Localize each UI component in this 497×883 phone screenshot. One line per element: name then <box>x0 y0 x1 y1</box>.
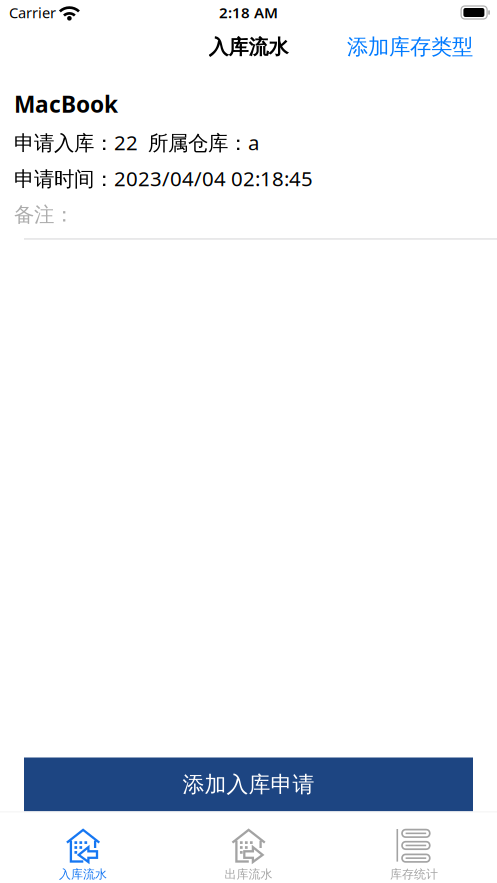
staticText: 入库流水 <box>208 34 288 60</box>
button[interactable]: 添加库存类型 <box>342 25 478 69</box>
staticText: 备注： <box>14 202 74 228</box>
staticText: 出库流水 <box>224 867 272 882</box>
staticText: 申请时间：2023/04/04 02:18:45 <box>14 164 313 192</box>
button[interactable]: 库存统计 <box>331 829 497 882</box>
button[interactable]: 出库流水 <box>166 829 331 882</box>
staticText: MacBook <box>14 89 118 119</box>
button[interactable]: 添加入库申请 <box>24 757 473 811</box>
staticText: 添加入库申请 <box>182 771 314 798</box>
staticText: Carrier <box>9 2 56 22</box>
staticText: 入库流水 <box>59 867 107 882</box>
staticText: 添加库存类型 <box>347 34 473 60</box>
staticText: 申请入库：22 所属仓库：a <box>14 128 259 156</box>
button[interactable]: 入库流水 <box>0 829 166 882</box>
staticText: 库存统计 <box>390 867 438 882</box>
staticText: 2:18 AM <box>219 2 278 23</box>
